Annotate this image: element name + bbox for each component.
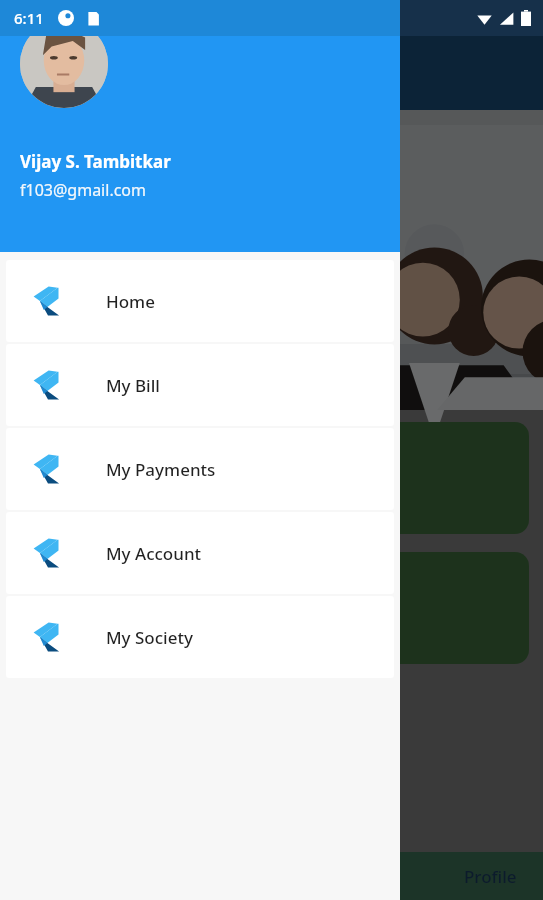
button[interactable]: My Society xyxy=(14,422,529,534)
staticText: 6:11 xyxy=(14,8,44,28)
staticText: Profile xyxy=(464,865,517,888)
staticText: My Payments xyxy=(106,458,216,481)
staticText: Home xyxy=(106,290,155,313)
staticText: My Account xyxy=(106,542,202,565)
staticText: My Bill xyxy=(106,374,160,397)
button[interactable]: My Society xyxy=(6,596,394,678)
staticText: f103@gmail.com xyxy=(20,179,146,201)
button[interactable]: Profile xyxy=(438,857,543,896)
button[interactable]: My Payments xyxy=(6,428,394,510)
button[interactable]: My Account xyxy=(6,512,394,594)
button[interactable]: Home xyxy=(6,260,394,342)
button[interactable]: Chat xyxy=(14,552,529,664)
staticText: My Society xyxy=(106,626,193,649)
staticText: Vijay S. Tambitkar xyxy=(20,150,171,173)
button[interactable]: My Bill xyxy=(6,344,394,426)
